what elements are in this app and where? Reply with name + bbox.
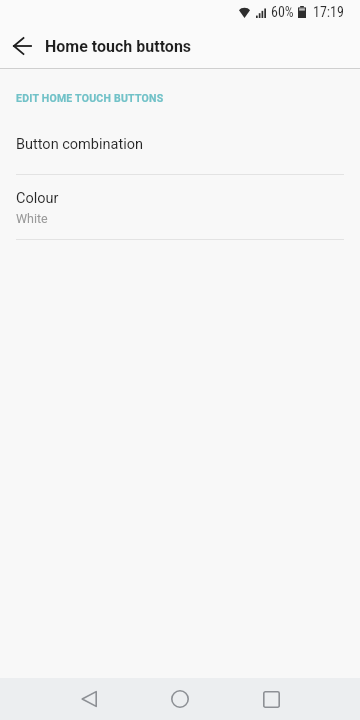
- button[interactable]: Navigate up: [0, 24, 44, 68]
- staticText: Button combination: [16, 136, 143, 153]
- staticText: Colour: [16, 190, 59, 207]
- button[interactable]: Recent apps: [247, 678, 295, 720]
- staticText: Home touch buttons: [45, 37, 192, 56]
- button[interactable]: Home: [156, 678, 204, 720]
- button[interactable]: Button combination: [0, 108, 360, 174]
- staticText: 60%: [271, 4, 294, 20]
- button[interactable]: Back: [65, 678, 113, 720]
- staticText: EDIT HOME TOUCH BUTTONS: [16, 92, 164, 104]
- staticText: 17:19: [313, 4, 344, 20]
- button[interactable]: Colour: [0, 175, 360, 239]
- staticText: White: [16, 211, 48, 226]
